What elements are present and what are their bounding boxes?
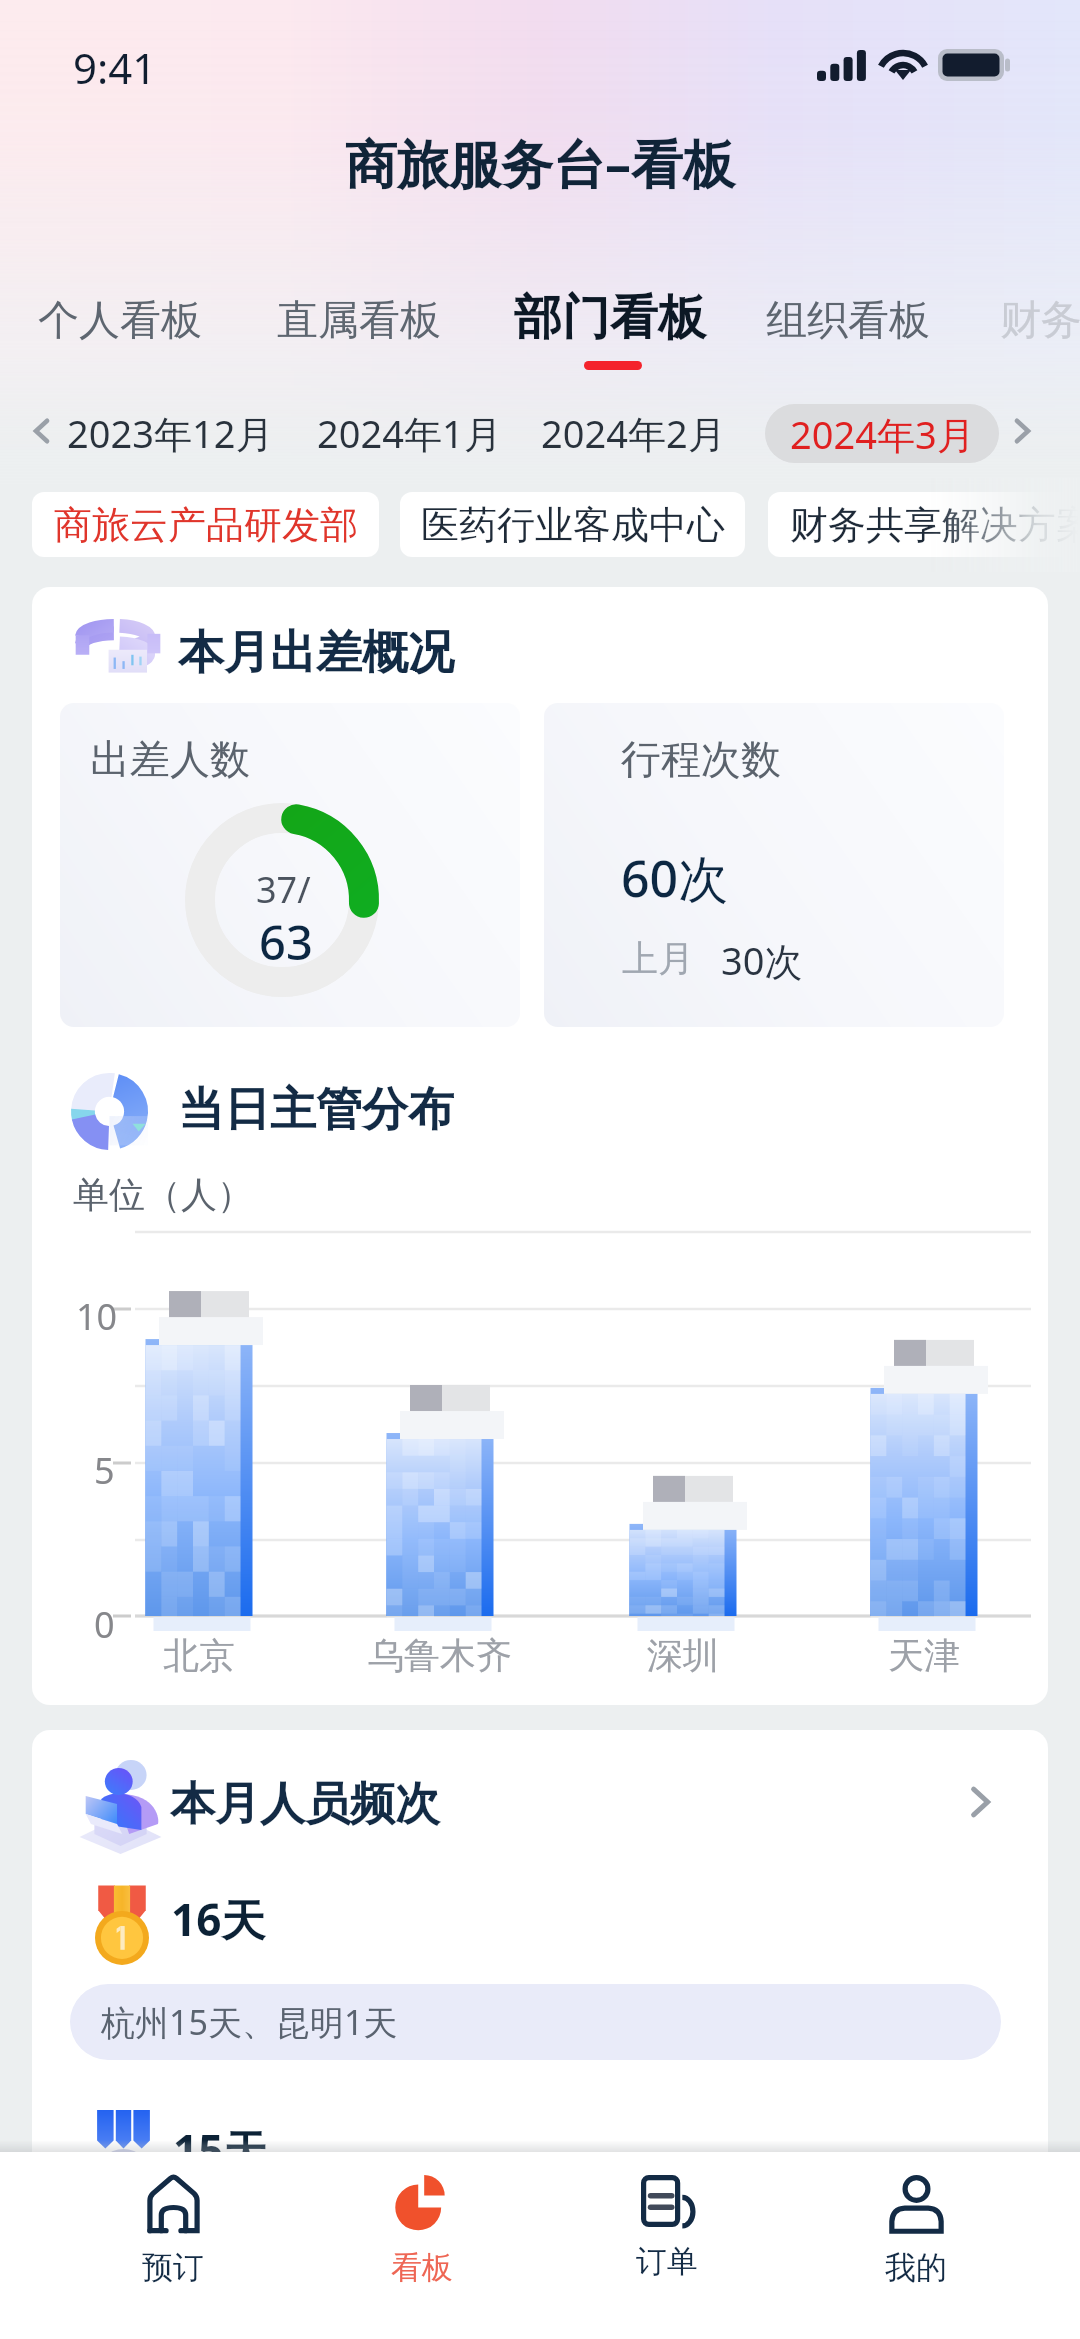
staticText: 商旅云产品研发部 bbox=[54, 501, 358, 549]
button[interactable]: Previous month bbox=[26, 415, 58, 447]
button[interactable]: Next month bbox=[1006, 415, 1038, 447]
button[interactable]: 财务共享解决方案部 bbox=[768, 492, 1080, 557]
staticText: 商旅服务台–看板 bbox=[345, 127, 736, 198]
staticText: 财务共享解决方案部 bbox=[790, 501, 1080, 549]
staticText: 我的 bbox=[885, 2248, 947, 2287]
staticText: 60次 bbox=[621, 844, 729, 912]
staticText: 行程次数 bbox=[621, 734, 781, 784]
staticText: 杭州15天、昆明1天 bbox=[101, 1999, 398, 2045]
staticText: 16天 bbox=[171, 1889, 266, 1949]
staticText: 预订 bbox=[142, 2248, 204, 2287]
button[interactable]: 2024年2月 bbox=[541, 407, 726, 459]
button[interactable]: 直属看板 bbox=[277, 295, 441, 347]
staticText: 15天 bbox=[173, 2120, 268, 2180]
staticText: 本月人员频次 bbox=[170, 1776, 440, 1833]
staticText: 个人看板 bbox=[38, 295, 202, 347]
staticText: 订单 bbox=[636, 2242, 698, 2281]
button[interactable]: 看板 bbox=[298, 2152, 546, 2312]
staticText: 北京 bbox=[163, 1633, 235, 1678]
staticText: 财务看板 bbox=[1000, 295, 1080, 347]
button[interactable]: 我的 bbox=[792, 2152, 1040, 2312]
staticText: 63 bbox=[259, 910, 313, 974]
staticText: 出差人数 bbox=[90, 734, 250, 784]
staticText: 10 bbox=[76, 1292, 118, 1341]
button[interactable]: 组织看板 bbox=[766, 295, 930, 347]
button[interactable]: 2024年3月 bbox=[765, 404, 999, 463]
staticText: 上月 bbox=[622, 936, 694, 981]
staticText: 5 bbox=[94, 1446, 115, 1495]
staticText: 30次 bbox=[721, 934, 803, 986]
staticText: 天津 bbox=[888, 1633, 960, 1678]
staticText: 部门看板 bbox=[514, 288, 706, 348]
staticText: 组织看板 bbox=[766, 295, 930, 347]
button[interactable]: 2024年1月 bbox=[317, 407, 502, 459]
staticText: 看板 bbox=[391, 2248, 453, 2287]
staticText: 单位（人） bbox=[73, 1172, 253, 1217]
staticText: 9:41 bbox=[73, 39, 157, 96]
button[interactable]: 部门看板 bbox=[514, 288, 706, 348]
staticText: 本月出差概况 bbox=[178, 624, 454, 682]
button[interactable]: More bbox=[948, 1770, 1012, 1834]
staticText: 当日主管分布 bbox=[178, 1081, 454, 1139]
staticText: 2024年1月 bbox=[317, 407, 502, 459]
staticText: 直属看板 bbox=[277, 295, 441, 347]
button[interactable]: 医药行业客成中心 bbox=[400, 492, 745, 557]
staticText: 0 bbox=[94, 1600, 115, 1649]
button[interactable]: 2023年12月 bbox=[67, 407, 274, 459]
staticText: 37/ bbox=[256, 865, 311, 914]
staticText: 乌鲁木齐 bbox=[368, 1633, 512, 1678]
staticText: 2023年12月 bbox=[67, 407, 274, 459]
button[interactable]: 财务看板 bbox=[1000, 295, 1080, 347]
button[interactable]: 个人看板 bbox=[38, 295, 202, 347]
staticText: 医药行业客成中心 bbox=[421, 501, 725, 549]
button[interactable]: 订单 bbox=[543, 2152, 791, 2312]
staticText: 2024年3月 bbox=[790, 408, 975, 460]
button[interactable]: 商旅云产品研发部 bbox=[32, 492, 379, 557]
staticText: 深圳 bbox=[647, 1633, 719, 1678]
button[interactable]: 预订 bbox=[49, 2152, 297, 2312]
staticText: 2024年2月 bbox=[541, 407, 726, 459]
